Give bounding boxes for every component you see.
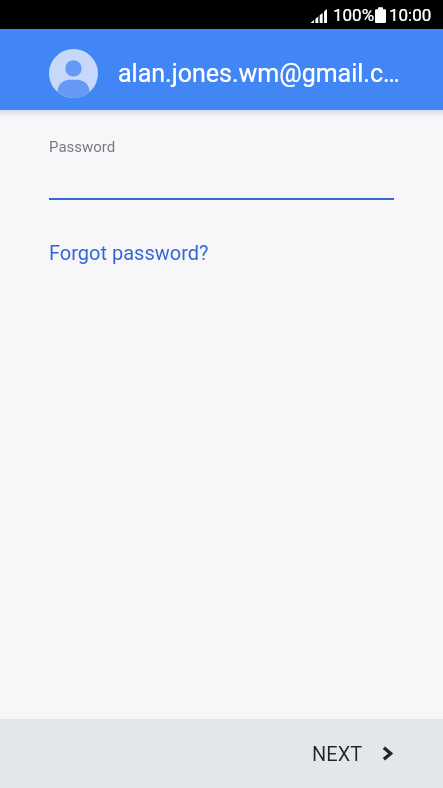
staticText: Forgot password? xyxy=(49,241,209,264)
staticText: Password xyxy=(49,138,116,156)
button[interactable]: Password field xyxy=(49,132,394,200)
button[interactable]: Account avatar xyxy=(0,29,443,110)
button[interactable]: NEXT xyxy=(282,719,443,788)
staticText: alan.jones.wm@gmail.com xyxy=(118,59,405,88)
other: Account avatar xyxy=(49,49,98,98)
staticText: NEXT xyxy=(312,742,363,765)
staticText: 10:00 xyxy=(389,5,432,25)
staticText: 100% xyxy=(333,5,375,25)
button[interactable]: Forgot password? xyxy=(49,237,209,268)
